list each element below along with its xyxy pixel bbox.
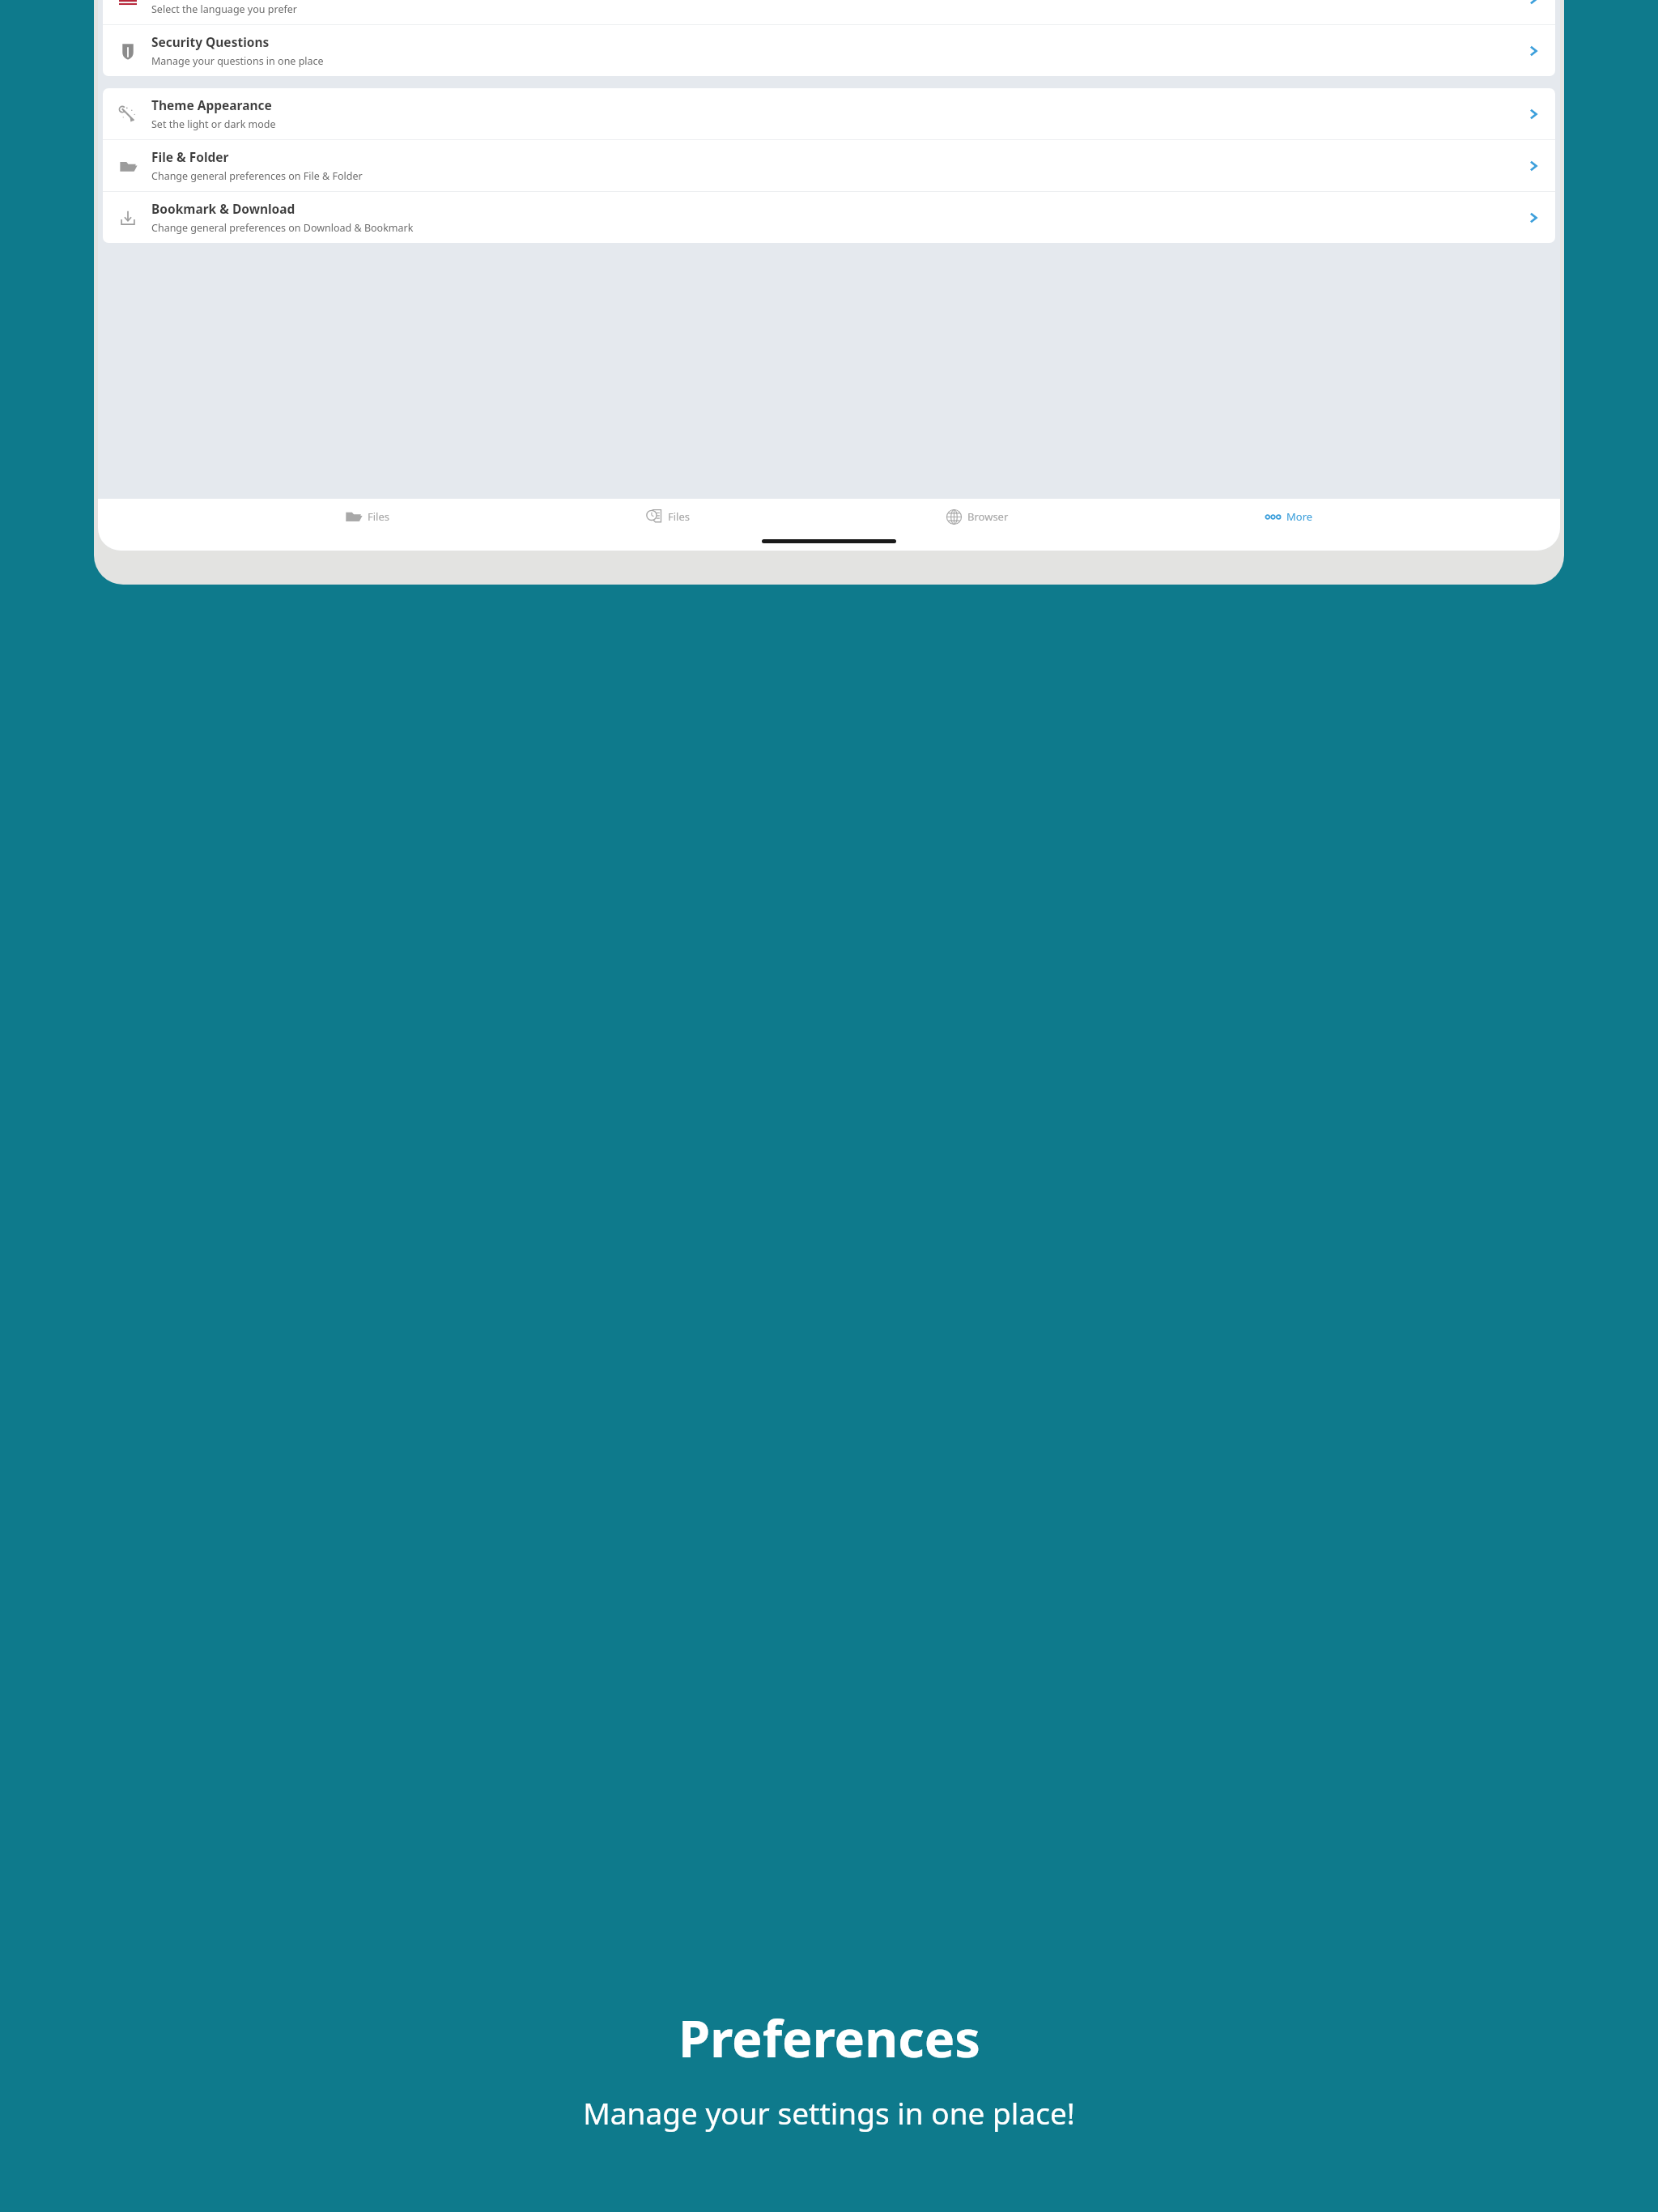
- button[interactable]: Browser: [937, 503, 1017, 530]
- staticText: File & Folder: [151, 148, 229, 165]
- button[interactable]: Files: [637, 503, 699, 530]
- staticText: Change general preferences on Download &…: [151, 221, 414, 235]
- other: Open: [1524, 0, 1542, 8]
- staticText: Browser: [967, 509, 1009, 524]
- staticText: More: [1286, 509, 1313, 524]
- button[interactable]: More: [1256, 503, 1321, 530]
- button[interactable]: Files: [337, 503, 398, 530]
- staticText: Security Questions: [151, 33, 270, 50]
- other: Open: [1524, 105, 1542, 123]
- button[interactable]: Theme Appearance: [103, 88, 1555, 139]
- staticText: Bookmark & Download: [151, 200, 295, 217]
- staticText: Manage your settings in one place!: [583, 2092, 1075, 2133]
- other: Open: [1524, 157, 1542, 175]
- staticText: Preferences: [678, 2003, 980, 2073]
- staticText: Change general preferences on File & Fol…: [151, 169, 363, 183]
- staticText: Theme Appearance: [151, 96, 272, 113]
- button[interactable]: Change language: [103, 0, 1555, 24]
- staticText: Manage your questions in one place: [151, 54, 324, 68]
- other: Open: [1524, 42, 1542, 60]
- staticText: Select the language you prefer: [151, 2, 297, 16]
- button[interactable]: Security Questions: [103, 25, 1555, 76]
- other: Open: [1524, 209, 1542, 227]
- button[interactable]: Bookmark & Download: [103, 192, 1555, 243]
- button[interactable]: File & Folder: [103, 140, 1555, 191]
- staticText: Files: [368, 509, 390, 524]
- staticText: Set the light or dark mode: [151, 117, 276, 131]
- staticText: Files: [668, 509, 691, 524]
